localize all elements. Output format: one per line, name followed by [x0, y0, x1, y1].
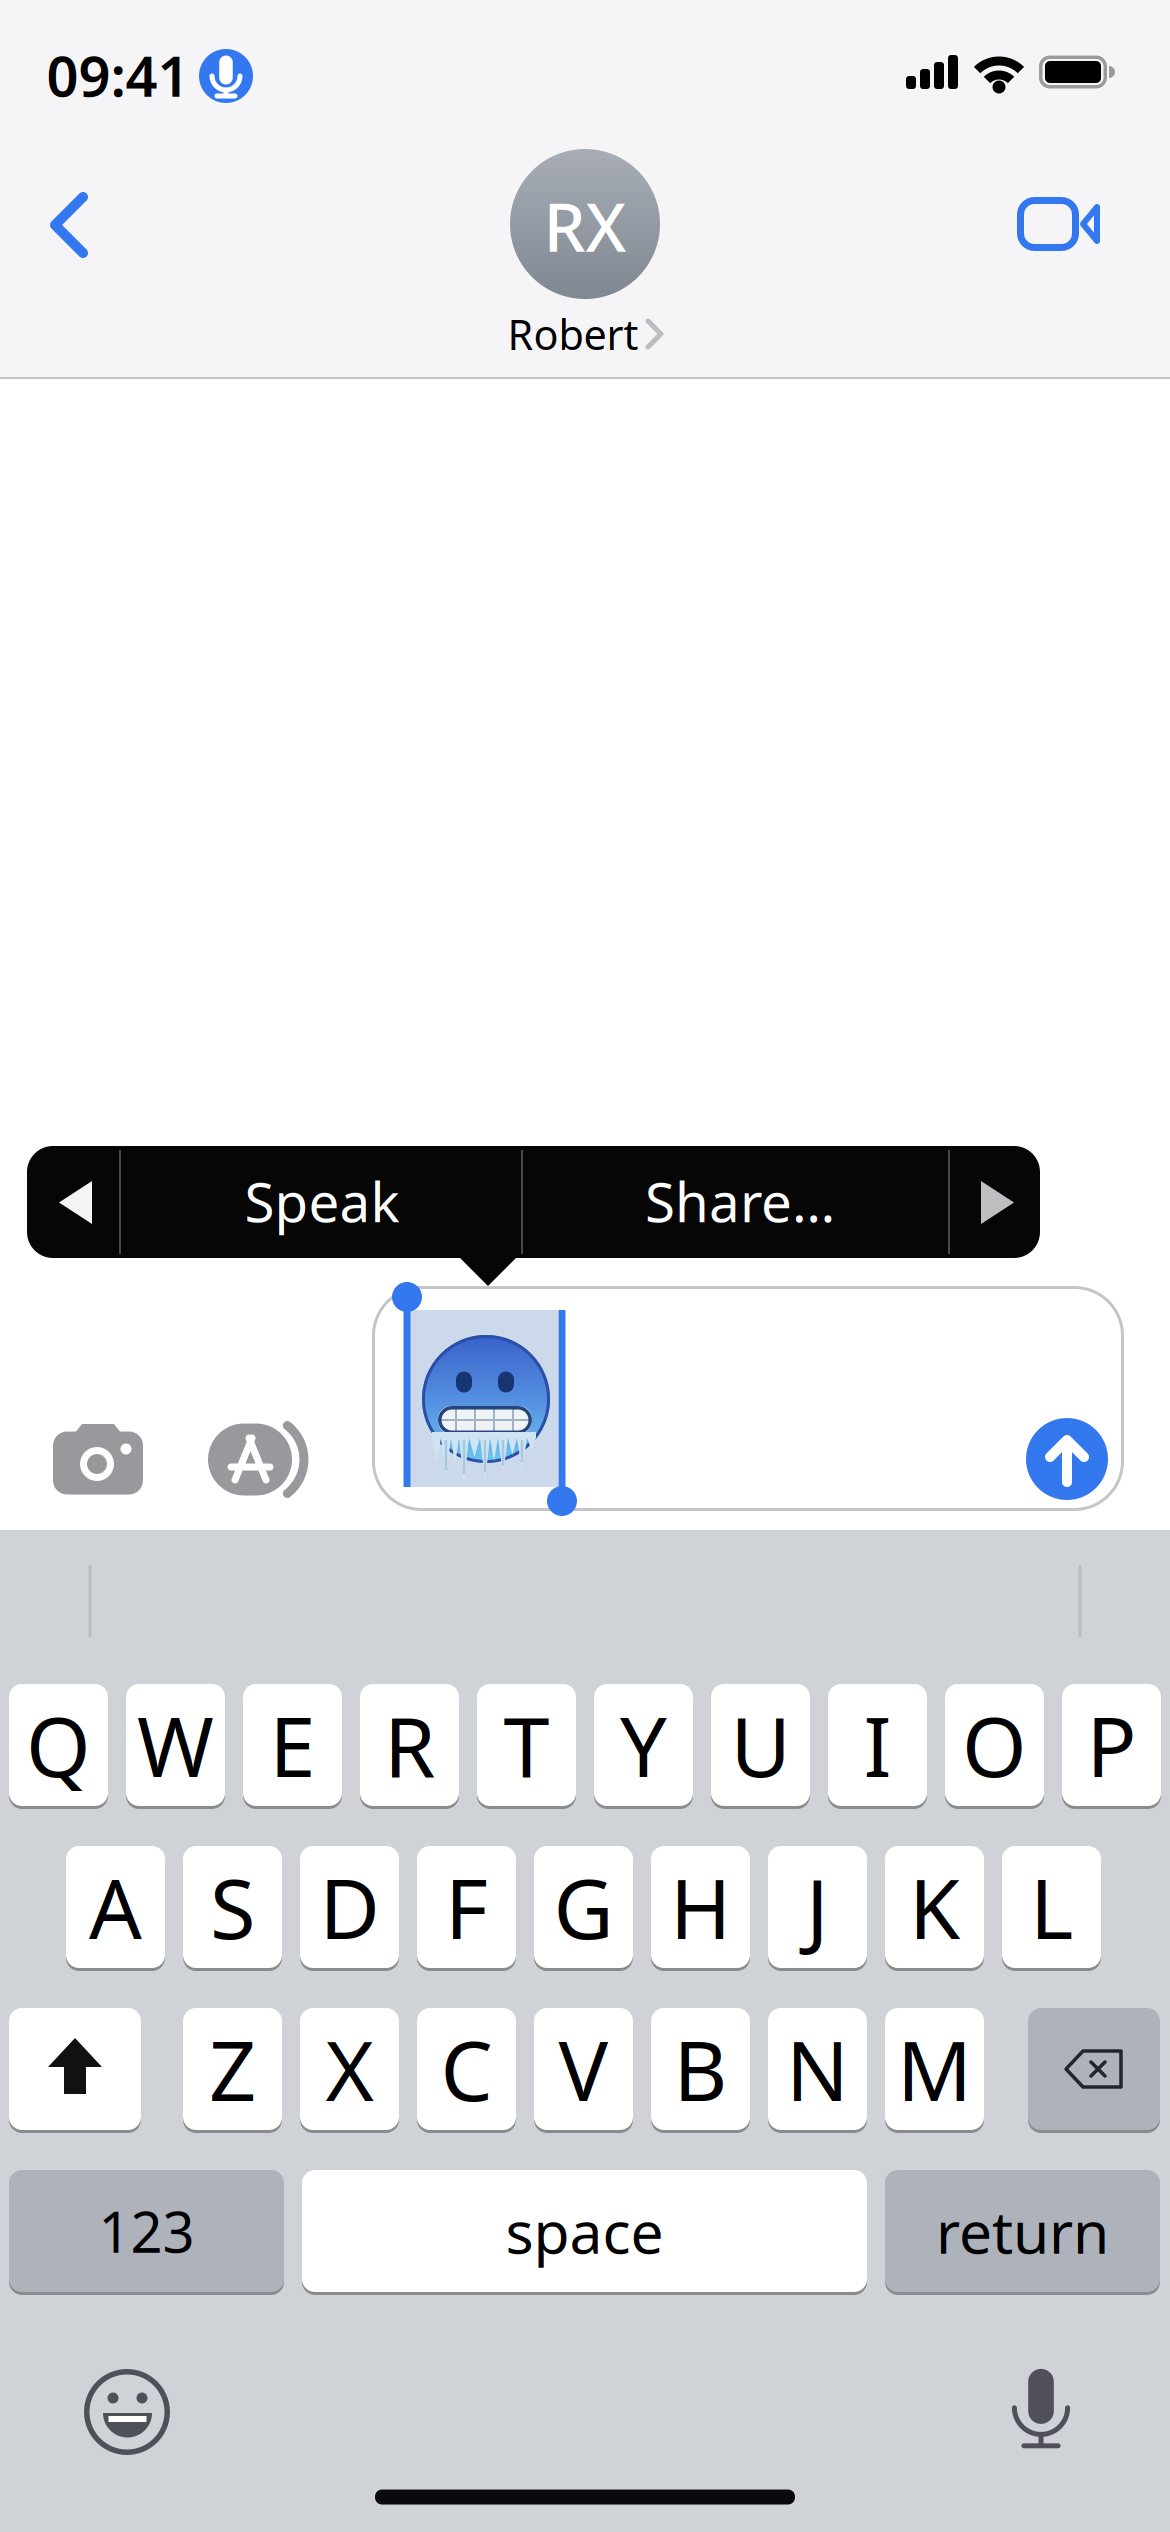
button[interactable]: I: [0, 0, 1170, 2532]
button[interactable]: Camera: [0, 0, 1170, 2532]
button[interactable]: H: [0, 0, 1170, 2532]
staticText: U: [730, 1690, 790, 1800]
staticText: F: [445, 1852, 488, 1962]
staticText: L: [1030, 1852, 1073, 1962]
staticText: I: [863, 1690, 891, 1800]
button[interactable]: space: [0, 0, 1170, 2532]
button[interactable]: V: [0, 0, 1170, 2532]
button[interactable]: B: [0, 0, 1170, 2532]
button[interactable]: Shift: [0, 0, 1170, 2532]
staticText: E: [269, 1690, 315, 1800]
button[interactable]: Share…: [0, 0, 1170, 2532]
staticText: A: [89, 1852, 142, 1962]
staticText: H: [670, 1852, 731, 1962]
button[interactable]: Robert, conversation details: [0, 0, 1170, 2532]
staticText: C: [440, 2014, 492, 2124]
button[interactable]: P: [0, 0, 1170, 2532]
staticText: 123: [98, 2194, 194, 2268]
button[interactable]: Q: [0, 0, 1170, 2532]
button[interactable]: Z: [0, 0, 1170, 2532]
button[interactable]: 123: [0, 0, 1170, 2532]
staticText: Share…: [645, 1165, 835, 1237]
staticText: RX: [543, 182, 626, 270]
button[interactable]: W: [0, 0, 1170, 2532]
button[interactable]: FaceTime: [0, 0, 1170, 2532]
button[interactable]: return: [0, 0, 1170, 2532]
button[interactable]: Emoji: [0, 0, 1170, 2532]
staticText: return: [936, 2192, 1109, 2270]
button[interactable]: D: [0, 0, 1170, 2532]
button[interactable]: Previous menu items: [0, 0, 1170, 2532]
staticText: T: [503, 1690, 549, 1800]
button[interactable]: S: [0, 0, 1170, 2532]
button[interactable]: A: [0, 0, 1170, 2532]
staticText: P: [1086, 1690, 1136, 1800]
button[interactable]: X: [0, 0, 1170, 2532]
staticText: N: [786, 2014, 849, 2124]
staticText: S: [210, 1852, 255, 1962]
staticText: O: [962, 1690, 1027, 1800]
staticText: Q: [26, 1690, 91, 1800]
button[interactable]: L: [0, 0, 1170, 2532]
staticText: G: [553, 1852, 613, 1962]
button[interactable]: G: [0, 0, 1170, 2532]
button[interactable]: Speak: [0, 0, 1170, 2532]
button[interactable]: F: [0, 0, 1170, 2532]
staticText: J: [806, 1852, 829, 1962]
button[interactable]: T: [0, 0, 1170, 2532]
button[interactable]: R: [0, 0, 1170, 2532]
staticText: Robert: [507, 307, 638, 361]
button[interactable]: U: [0, 0, 1170, 2532]
button[interactable]: C: [0, 0, 1170, 2532]
staticText: R: [384, 1690, 435, 1800]
button[interactable]: Y: [0, 0, 1170, 2532]
staticText: D: [319, 1852, 379, 1962]
button[interactable]: Apps: [0, 0, 1170, 2532]
button[interactable]: Next menu items: [0, 0, 1170, 2532]
staticText: W: [137, 1690, 214, 1800]
button[interactable]: K: [0, 0, 1170, 2532]
staticText: Y: [620, 1690, 667, 1800]
button[interactable]: E: [0, 0, 1170, 2532]
staticText: X: [325, 2014, 373, 2124]
button[interactable]: Send: [0, 0, 1170, 2532]
staticText: Speak: [244, 1165, 399, 1237]
staticText: K: [909, 1852, 960, 1962]
button[interactable]: M: [0, 0, 1170, 2532]
staticText: Z: [209, 2014, 256, 2124]
button[interactable]: Dictation: [0, 0, 1170, 2532]
staticText: 09:41: [46, 38, 189, 112]
button[interactable]: O: [0, 0, 1170, 2532]
button[interactable]: J: [0, 0, 1170, 2532]
staticText: space: [505, 2192, 663, 2270]
button[interactable]: N: [0, 0, 1170, 2532]
button[interactable]: Delete: [0, 0, 1170, 2532]
staticText: V: [558, 2014, 608, 2124]
staticText: B: [673, 2014, 727, 2124]
button[interactable]: Back: [0, 0, 1170, 2532]
staticText: M: [897, 2014, 972, 2124]
